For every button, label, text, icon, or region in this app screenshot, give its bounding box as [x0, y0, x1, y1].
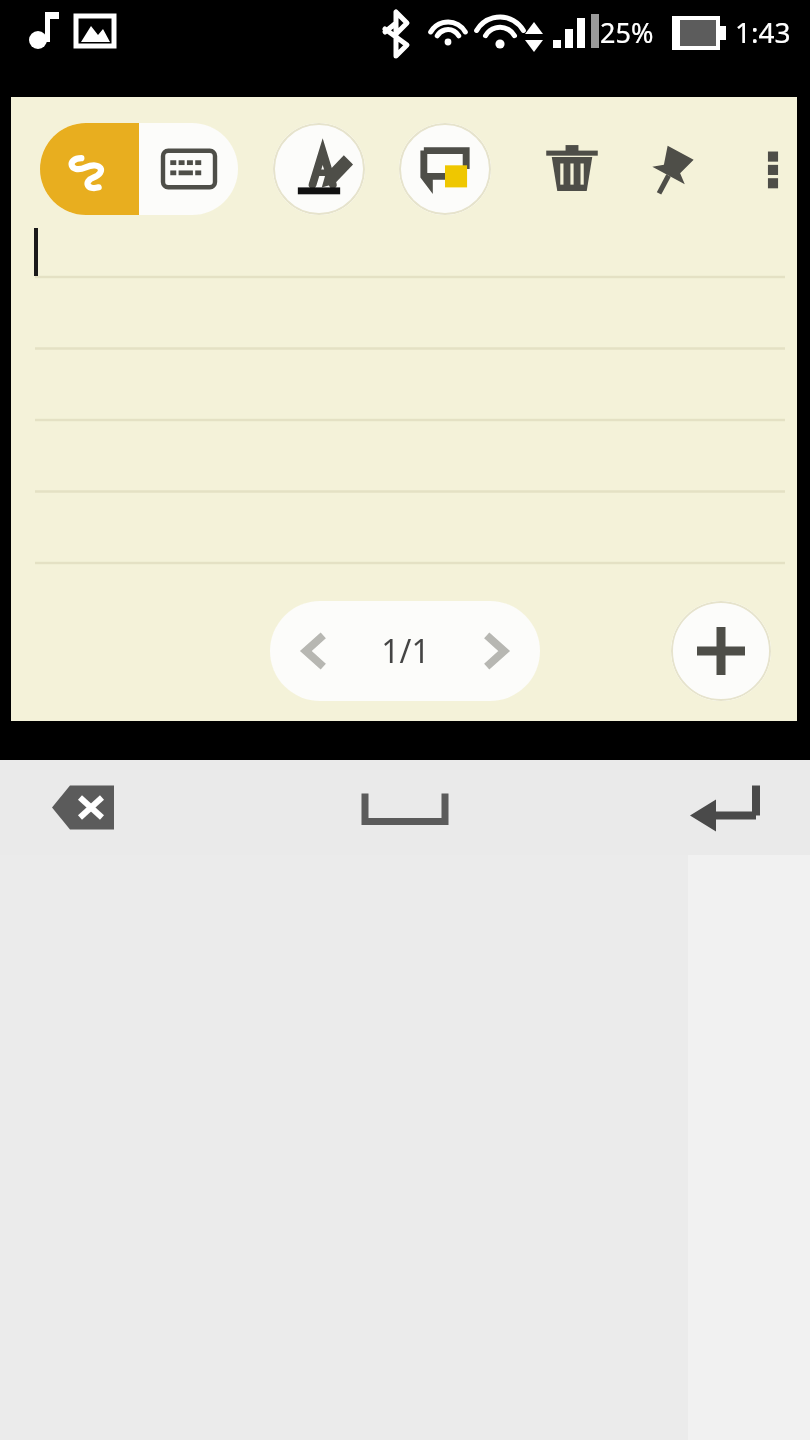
button[interactable]: Pin — [626, 123, 718, 215]
button[interactable]: Delete — [526, 123, 618, 215]
button[interactable]: Next page — [450, 601, 540, 701]
staticText: 1/1 — [381, 629, 430, 673]
button[interactable]: Handwriting mode — [40, 123, 139, 215]
button[interactable]: Pen settings — [273, 123, 365, 215]
button[interactable]: Insert shape — [399, 123, 491, 215]
button[interactable]: Previous page — [270, 601, 360, 701]
button[interactable]: More options — [727, 123, 810, 215]
button[interactable]: Keyboard mode — [139, 123, 238, 215]
staticText: 25% — [600, 14, 654, 51]
staticText: 1:43 — [735, 13, 791, 51]
button[interactable]: Add page — [671, 601, 771, 701]
